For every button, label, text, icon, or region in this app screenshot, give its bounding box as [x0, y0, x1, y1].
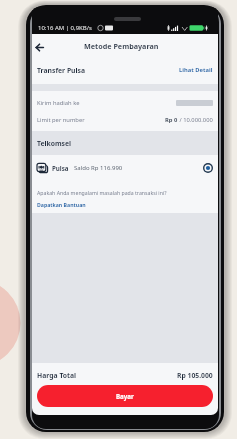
button[interactable]: Back: [33, 37, 49, 53]
staticText: Limit per number: [37, 116, 85, 124]
staticText: Telkomsel: [37, 139, 72, 148]
staticText: Rp 0: [165, 116, 178, 124]
staticText: Harga Total: [37, 371, 77, 380]
staticText: Pulsa: [52, 164, 69, 172]
staticText: Bayar: [116, 392, 134, 400]
button[interactable]: Lihat Detail: [179, 66, 213, 74]
staticText: Transfer Pulsa: [37, 66, 86, 75]
staticText: Lihat Detail: [179, 66, 213, 74]
staticText: Metode Pembayaran: [84, 41, 159, 51]
button[interactable]: Pulsa: [32, 155, 218, 180]
button[interactable]: Dapatkan Bantuan: [37, 201, 86, 208]
staticText: Apakah Anda mengalami masalah pada trans…: [37, 189, 167, 196]
button[interactable]: Bayar: [37, 385, 213, 407]
button[interactable]: Select Pulsa: [203, 163, 213, 173]
staticText: Rp 105.000: [177, 371, 213, 380]
staticText: / 10.000.000: [178, 116, 213, 124]
staticText: Dapatkan Bantuan: [37, 201, 86, 208]
staticText: Saldo Rp 116.990: [74, 164, 123, 172]
staticText: Kirim hadiah ke: [37, 99, 80, 107]
staticText: 10:16 AM | 0,9KB/s: [38, 24, 92, 32]
